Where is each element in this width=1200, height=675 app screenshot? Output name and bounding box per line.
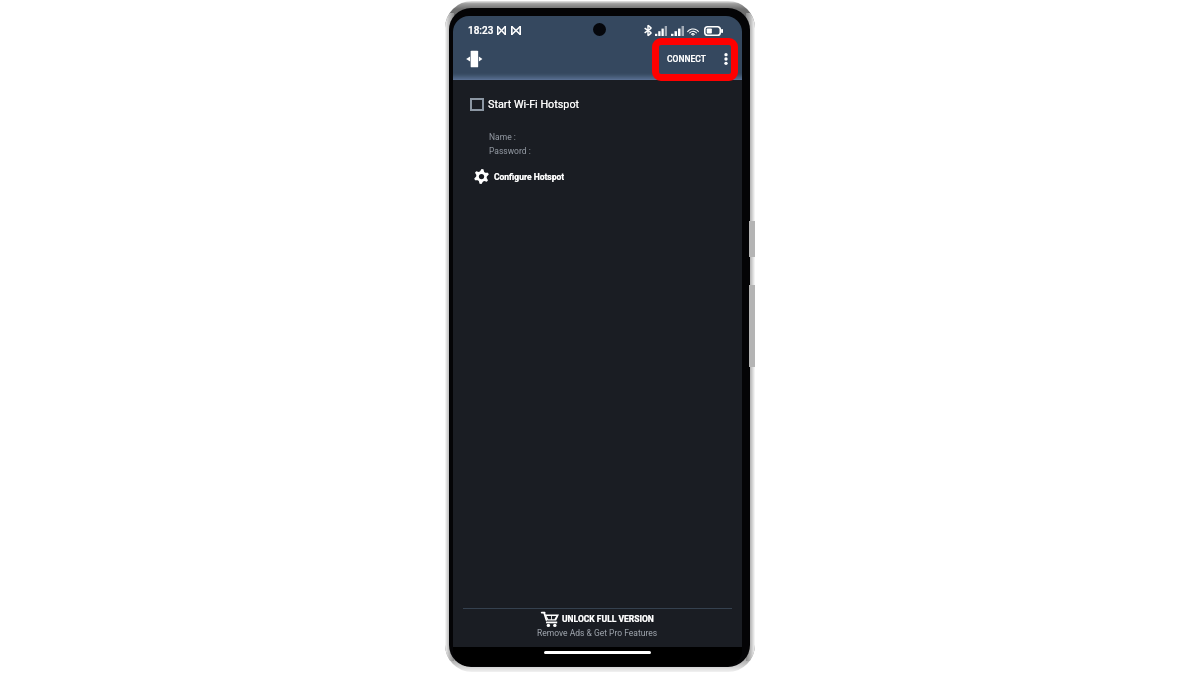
button[interactable]: UNLOCK FULL VERSION	[453, 608, 742, 647]
staticText: Configure Hotspot	[494, 172, 565, 182]
staticText: 18:23	[468, 25, 494, 37]
button[interactable]: Configure Hotspot	[453, 167, 742, 186]
button[interactable]: Start Wi-Fi Hotspot	[453, 95, 742, 114]
staticText: Start Wi-Fi Hotspot	[488, 98, 580, 111]
staticText: UNLOCK FULL VERSION	[562, 614, 654, 624]
button[interactable]: CONNECT	[664, 45, 709, 73]
staticText: Name :	[489, 132, 516, 142]
staticText: CONNECT	[667, 54, 706, 64]
button[interactable]: More options	[715, 48, 737, 70]
staticText: Password :	[489, 146, 531, 156]
button[interactable]: App icon	[465, 50, 483, 68]
staticText: Remove Ads & Get Pro Features	[537, 628, 658, 638]
